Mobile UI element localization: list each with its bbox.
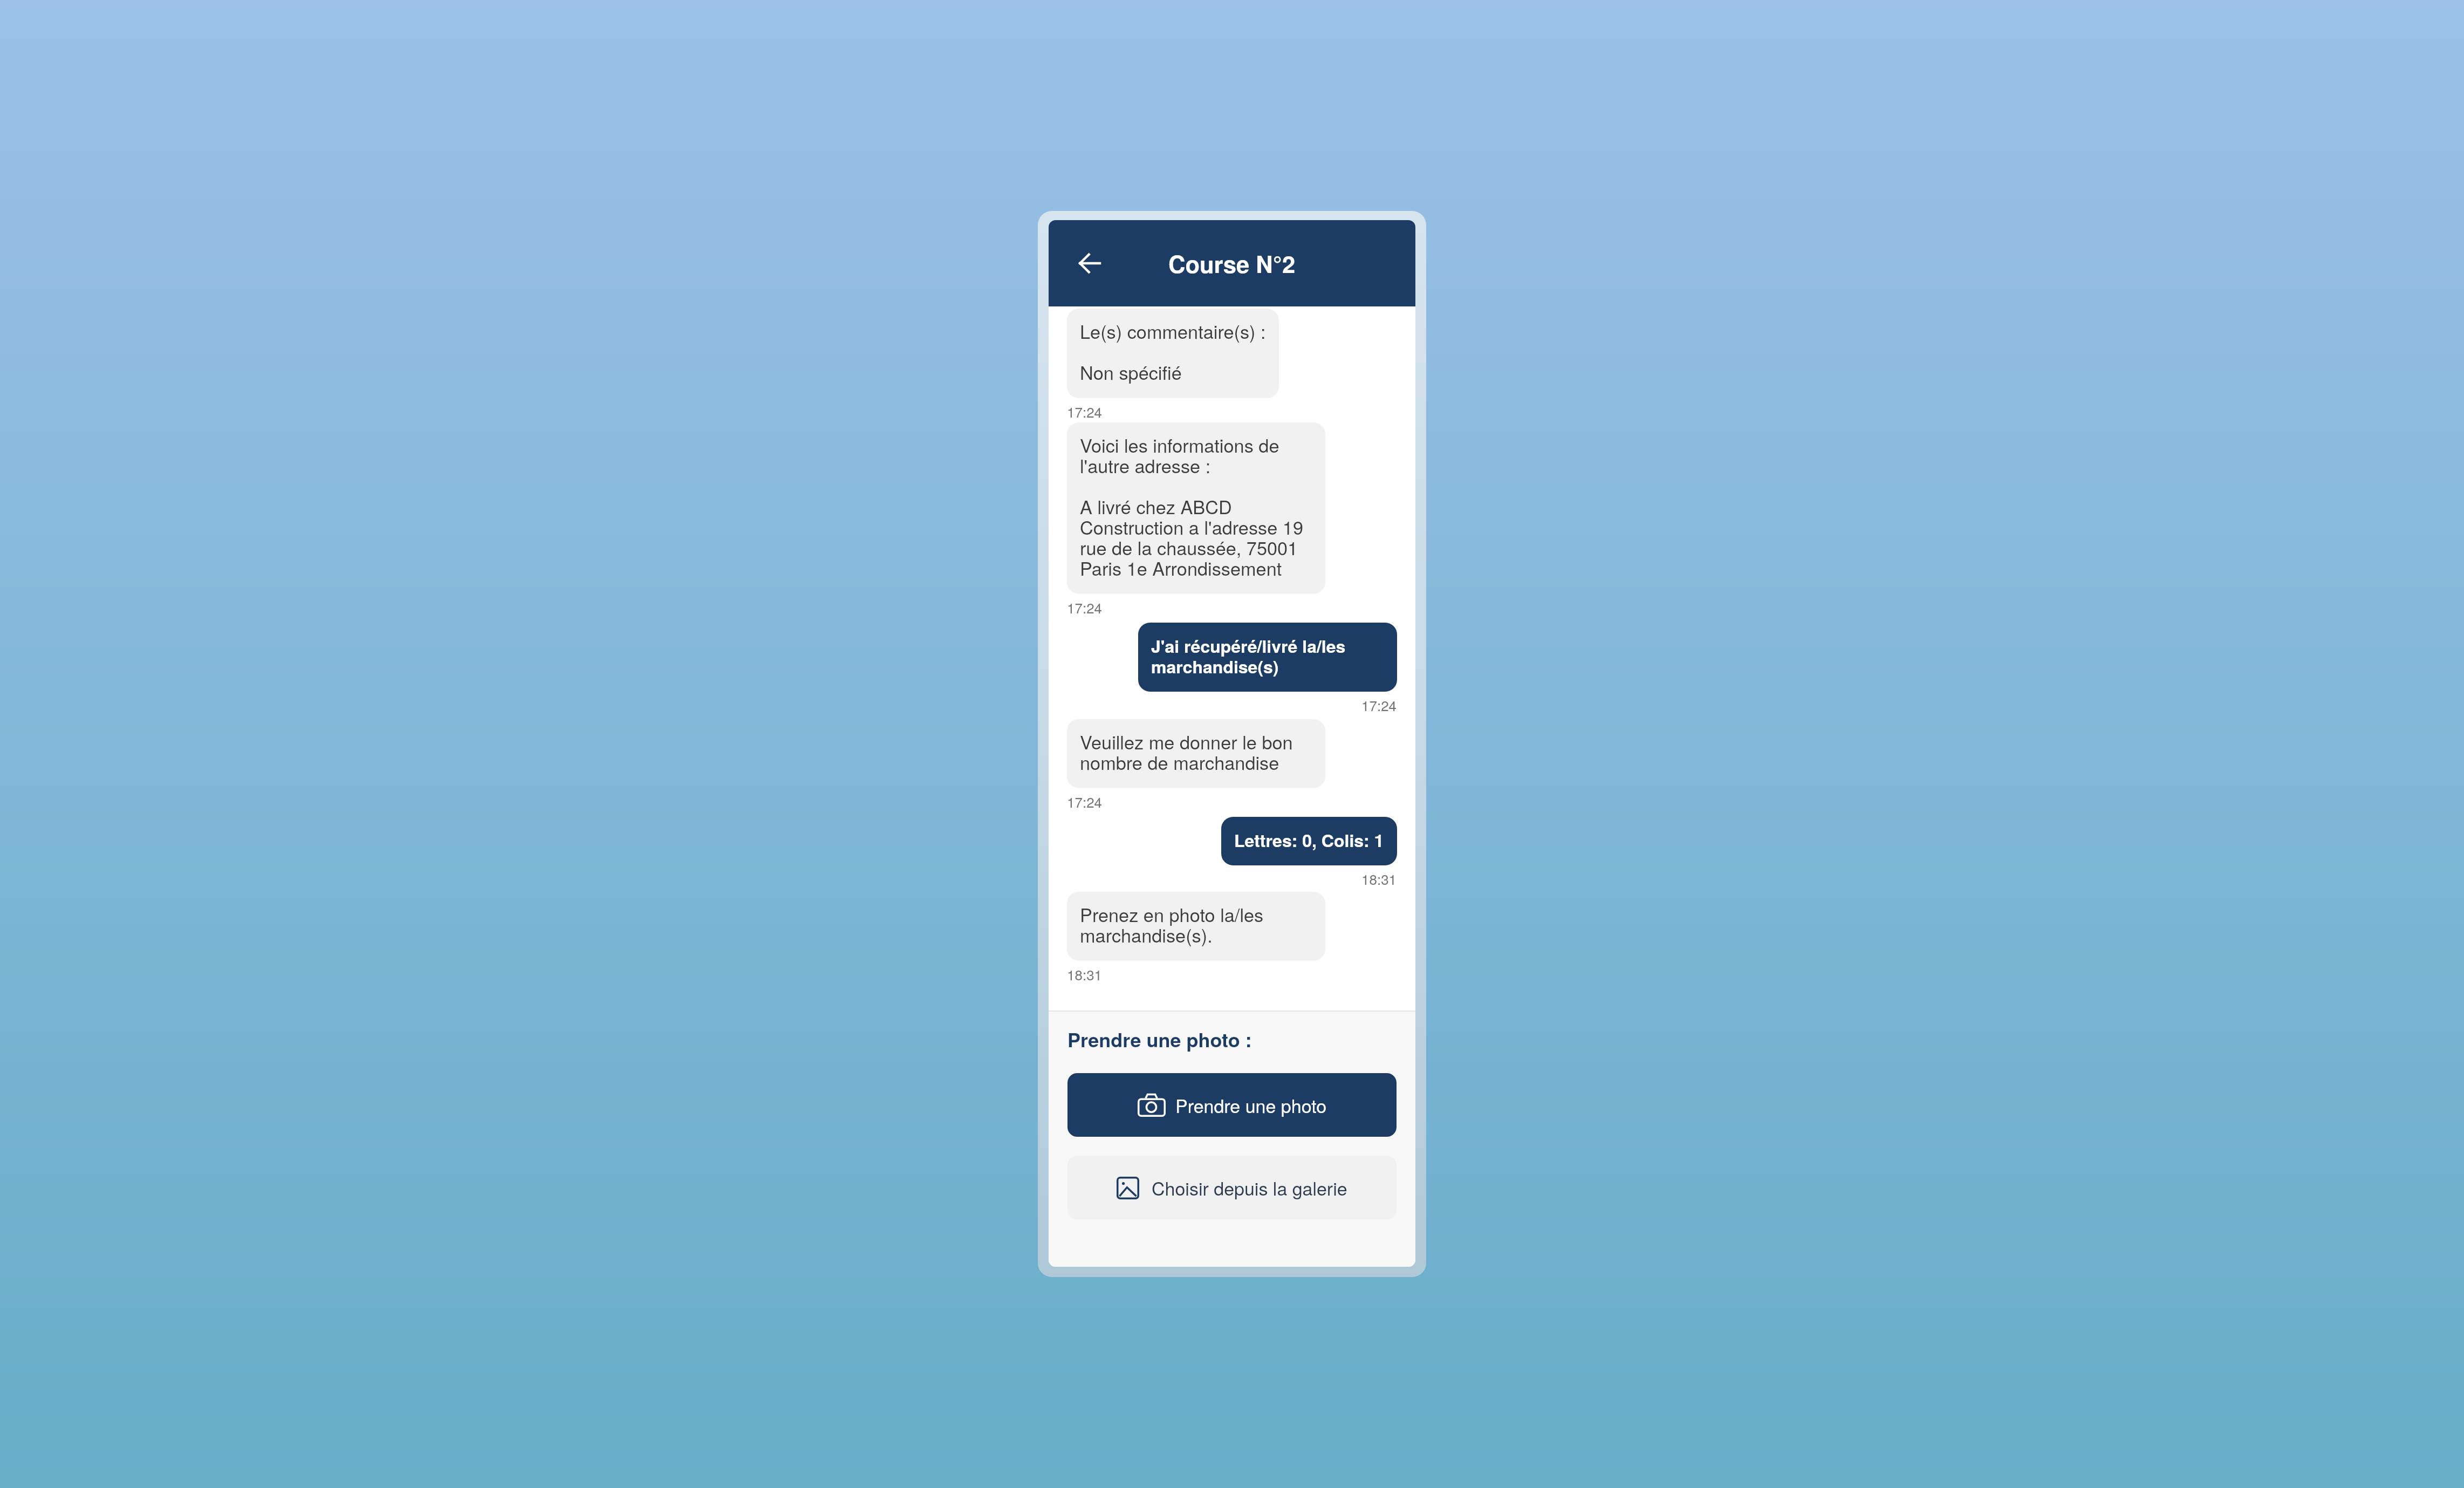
staticText: Course N°2 bbox=[1168, 247, 1296, 280]
staticText: Lettres: 0, Colis: 1 bbox=[1234, 831, 1384, 851]
staticText: 18:31 bbox=[1361, 869, 1397, 889]
staticText: Prendre une photo bbox=[1175, 1092, 1327, 1118]
staticText: Prenez en photo la/les marchandise(s). bbox=[1080, 906, 1264, 947]
staticText: 17:24 bbox=[1067, 401, 1103, 421]
staticText: Veuillez me donner le bon nombre de marc… bbox=[1080, 733, 1293, 774]
staticText: 17:24 bbox=[1067, 597, 1103, 617]
staticText: Le(s) commentaire(s) : Non spécifié bbox=[1080, 323, 1266, 384]
staticText: 17:24 bbox=[1361, 695, 1397, 715]
staticText: 18:31 bbox=[1067, 964, 1103, 984]
staticText: Voici les informations de l'autre adress… bbox=[1080, 436, 1303, 580]
staticText: 17:24 bbox=[1067, 791, 1103, 811]
button[interactable]: Prendre une photo bbox=[1067, 1073, 1397, 1137]
button[interactable]: Back bbox=[1069, 243, 1110, 284]
button[interactable]: Choisir depuis la galerie bbox=[1067, 1156, 1397, 1219]
staticText: Prendre une photo : bbox=[1067, 1025, 1252, 1053]
staticText: Choisir depuis la galerie bbox=[1152, 1175, 1347, 1201]
staticText: J'ai récupéré/livré la/les marchandise(s… bbox=[1151, 637, 1346, 678]
